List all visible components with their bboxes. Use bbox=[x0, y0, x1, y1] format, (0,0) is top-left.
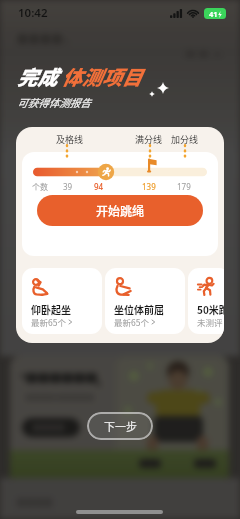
staticText: 未测评 bbox=[197, 316, 223, 328]
button[interactable]: 50米跑 bbox=[188, 268, 224, 334]
button[interactable]: 坐位体前屈 bbox=[105, 268, 185, 334]
staticText: 满分线 bbox=[135, 133, 163, 146]
staticText: 50米跑 bbox=[197, 302, 224, 316]
staticText: 139 bbox=[142, 181, 156, 192]
staticText: 及格线 bbox=[56, 133, 84, 146]
button[interactable]: 下一步 bbox=[87, 412, 153, 440]
staticText: 加分线 bbox=[171, 133, 199, 146]
staticText: 94 bbox=[94, 181, 104, 192]
staticText: 最新65个 bbox=[31, 316, 66, 328]
staticText: 179 bbox=[177, 181, 191, 192]
staticText: 最新65个 bbox=[114, 316, 149, 328]
staticText: 10:42 bbox=[18, 5, 48, 21]
staticText: 个数 bbox=[32, 181, 48, 193]
button[interactable]: 开始跳绳 bbox=[37, 195, 203, 226]
staticText: 下一步 bbox=[104, 418, 137, 434]
staticText: 完成 体测项目 bbox=[17, 62, 142, 91]
staticText: 坐位体前屈 bbox=[114, 302, 164, 316]
staticText: 仰卧起坐 bbox=[31, 302, 71, 316]
staticText: 可获得体测报告 bbox=[17, 95, 91, 110]
staticText: 41 bbox=[209, 9, 218, 19]
staticText: 39 bbox=[63, 181, 73, 192]
button[interactable]: 仰卧起坐 bbox=[22, 268, 102, 334]
staticText: 开始跳绳 bbox=[96, 202, 145, 219]
